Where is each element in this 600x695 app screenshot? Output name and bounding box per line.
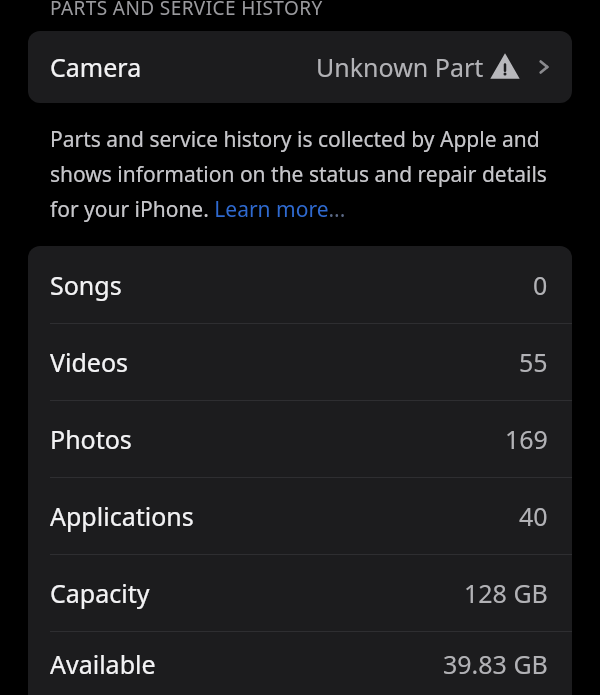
staticText: PARTS AND SERVICE HISTORY [50,0,323,17]
staticText: Parts and service history is collected b… [50,125,564,224]
staticText: 40 [519,499,548,533]
staticText: 0 [533,268,548,302]
button[interactable]: Videos [28,324,572,400]
staticText: Songs [50,268,122,302]
button[interactable]: Capacity [28,555,572,631]
staticText: Unknown Part [316,50,484,84]
staticText: Capacity [50,576,150,610]
other: Warning [492,54,518,80]
button[interactable]: Songs [28,246,572,323]
staticText: 55 [519,345,548,379]
button[interactable]: Applications [28,478,572,554]
button[interactable]: Photos [28,401,572,477]
staticText: Applications [50,499,194,533]
staticText: Camera [50,50,142,84]
staticText: 169 [505,422,548,456]
staticText: Available [50,647,156,681]
staticText: Photos [50,422,132,456]
button[interactable]: Available [28,632,572,695]
staticText: 128 GB [464,576,548,610]
staticText: Videos [50,345,129,379]
button[interactable]: Camera [28,31,572,103]
staticText: 39.83 GB [443,647,548,681]
